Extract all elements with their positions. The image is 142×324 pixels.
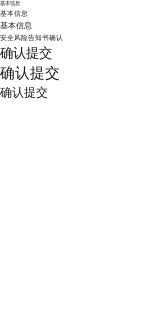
staticText: 确认提交 <box>0 45 52 61</box>
staticText: 基本信息 <box>0 21 32 30</box>
staticText: 确认提交 <box>0 64 60 82</box>
staticText: 确认提交 <box>0 85 48 100</box>
staticText: 基本信息 <box>0 0 20 7</box>
staticText: 基本信息 <box>0 10 28 18</box>
staticText: 安全风险告知书确认 <box>0 34 63 42</box>
